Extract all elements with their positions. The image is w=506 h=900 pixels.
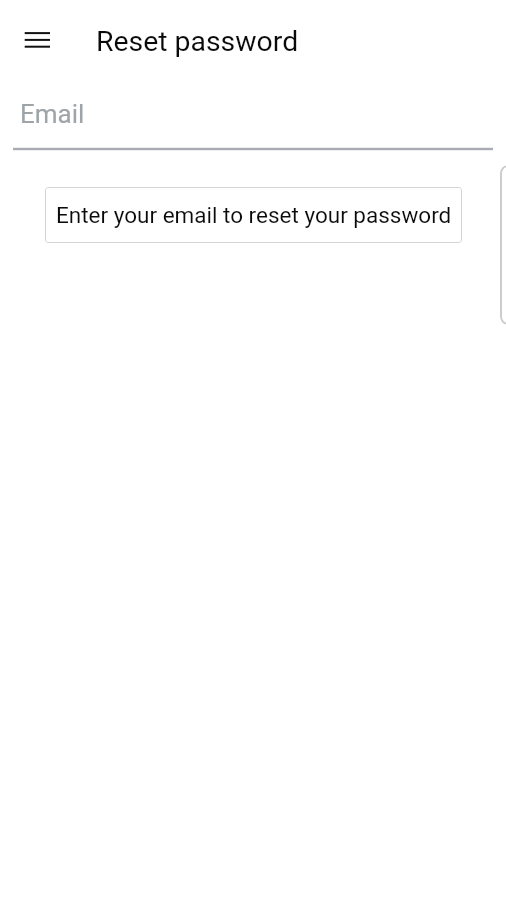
staticText: Enter your email to reset your password	[56, 202, 452, 228]
button[interactable]: Enter your email to reset your password	[45, 187, 462, 243]
button[interactable]: Next card	[500, 165, 506, 325]
staticText: Email	[20, 99, 85, 129]
button[interactable]: Email	[0, 86, 506, 152]
staticText: Reset password	[96, 25, 299, 58]
button[interactable]: Open navigation menu	[13, 16, 61, 64]
